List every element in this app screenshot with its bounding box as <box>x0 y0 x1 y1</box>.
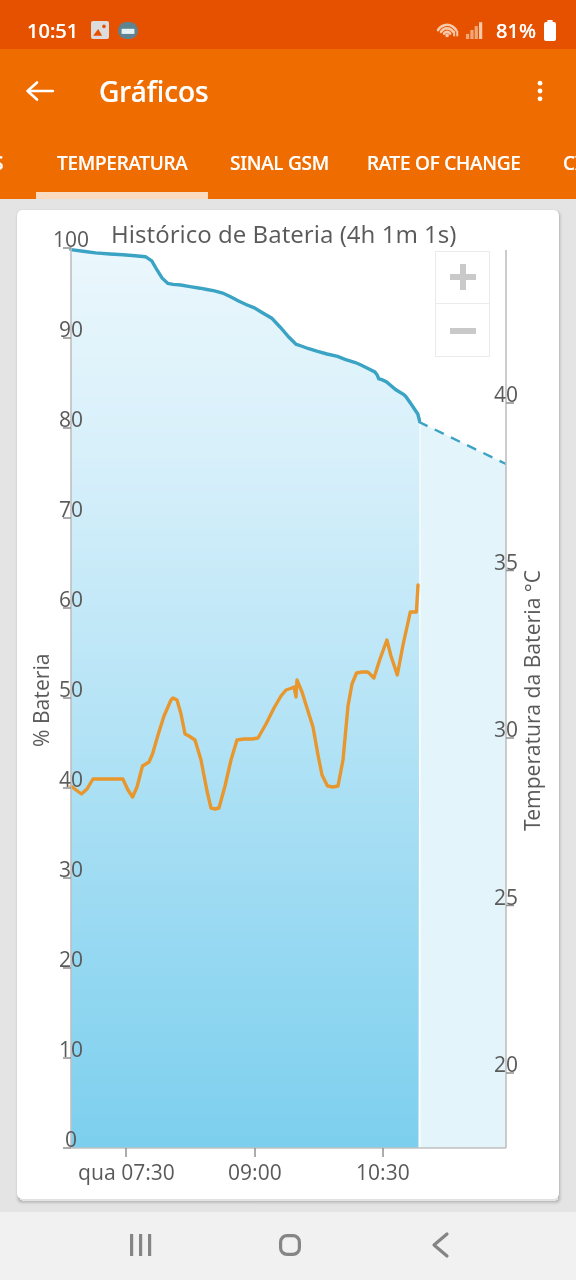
staticText: Gráficos <box>99 72 209 110</box>
staticText: qua 07:30 <box>78 1158 175 1187</box>
staticText: 25 <box>494 883 519 912</box>
button[interactable]: Zoom out <box>435 304 490 357</box>
staticText: 10:51 <box>27 17 79 44</box>
button[interactable]: CI <box>544 133 576 199</box>
staticText: 100 <box>53 225 90 254</box>
button[interactable]: More options <box>516 67 564 115</box>
button[interactable]: TEMPERATURA <box>36 133 208 199</box>
button[interactable]: Recent apps <box>108 1213 172 1277</box>
staticText: 81% <box>496 17 536 44</box>
button[interactable]: Zoom in <box>435 251 490 303</box>
button[interactable]: SINAL GSM <box>214 133 344 199</box>
staticText: TEMPERATURA <box>57 150 188 176</box>
staticText: 80 <box>59 405 84 434</box>
button[interactable]: Back <box>408 1213 472 1277</box>
staticText: CI <box>563 150 576 176</box>
staticText: 70 <box>59 495 84 524</box>
staticText: % Bateria <box>27 653 56 747</box>
button[interactable]: S <box>0 133 24 199</box>
staticText: 10 <box>59 1035 84 1064</box>
staticText: 09:00 <box>228 1158 282 1187</box>
staticText: Temperatura da Bateria °C <box>518 569 547 831</box>
staticText: 20 <box>494 1050 519 1079</box>
staticText: 30 <box>59 855 84 884</box>
staticText: 10:30 <box>356 1158 410 1187</box>
staticText: 30 <box>494 715 519 744</box>
staticText: 50 <box>59 675 84 704</box>
staticText: 0 <box>65 1125 78 1154</box>
button[interactable]: RATE OF CHANGE <box>350 133 538 199</box>
staticText: 90 <box>59 315 84 344</box>
staticText: 35 <box>494 548 519 577</box>
staticText: 60 <box>59 585 84 614</box>
staticText: S <box>0 150 4 176</box>
staticText: RATE OF CHANGE <box>367 150 521 176</box>
button[interactable]: Home <box>258 1213 322 1277</box>
staticText: Histórico de Bateria (4h 1m 1s) <box>111 217 457 250</box>
staticText: 40 <box>494 380 519 409</box>
staticText: 20 <box>59 945 84 974</box>
button[interactable]: Back <box>16 67 64 115</box>
staticText: SINAL GSM <box>230 150 329 176</box>
staticText: 40 <box>59 765 84 794</box>
